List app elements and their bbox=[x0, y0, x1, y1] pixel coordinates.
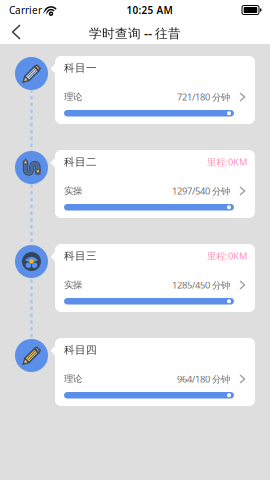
staticText: 10:25 AM bbox=[126, 3, 172, 17]
staticText: 理论 bbox=[64, 91, 82, 103]
staticText: 里程:0KM bbox=[207, 156, 247, 168]
staticText: 学时查询 -- 往昔 bbox=[89, 24, 181, 42]
staticText: 实操 bbox=[64, 185, 82, 197]
button[interactable]: 科目一 bbox=[55, 56, 255, 124]
button[interactable]: 科目四 bbox=[15, 339, 48, 372]
staticText: 1285/450 分钟 bbox=[172, 279, 230, 291]
button[interactable]: 科目四 bbox=[55, 338, 255, 406]
staticText: 科目三 bbox=[64, 249, 97, 263]
button[interactable]: 科目三 bbox=[15, 245, 48, 278]
staticText: 科目一 bbox=[64, 61, 97, 75]
staticText: 实操 bbox=[64, 279, 82, 291]
button[interactable]: Back bbox=[3, 20, 29, 44]
button[interactable]: 科目二 bbox=[55, 150, 255, 218]
staticText: 科目二 bbox=[64, 155, 97, 169]
staticText: 1297/540 分钟 bbox=[172, 185, 230, 197]
staticText: 964/180 分钟 bbox=[177, 373, 230, 385]
button[interactable]: 科目一 bbox=[15, 57, 48, 90]
button[interactable]: 科目二 bbox=[15, 151, 48, 184]
staticText: 里程:0KM bbox=[207, 250, 247, 262]
staticText: Carrier bbox=[9, 3, 42, 17]
staticText: 721/180 分钟 bbox=[177, 91, 230, 103]
button[interactable]: 科目三 bbox=[55, 244, 255, 312]
staticText: 理论 bbox=[64, 373, 82, 385]
staticText: 科目四 bbox=[64, 343, 97, 357]
